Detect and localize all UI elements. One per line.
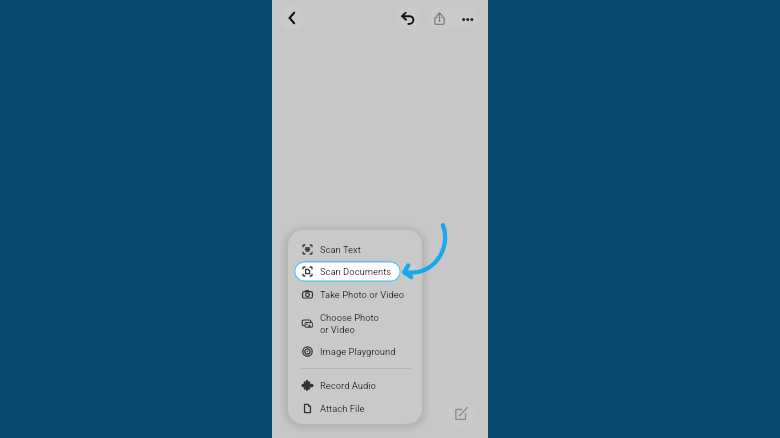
staticText: Choose Photo [320, 312, 379, 323]
button[interactable]: Scan Documents [294, 261, 401, 282]
staticText: Scan Documents [320, 266, 392, 277]
button[interactable]: New note [447, 400, 475, 428]
button[interactable]: Choose Photo [288, 310, 422, 336]
button[interactable]: Scan Text [288, 239, 422, 260]
staticText: Take Photo or Video [320, 289, 405, 300]
staticText: Scan Text [320, 244, 361, 255]
button[interactable]: Attach File [288, 398, 422, 419]
staticText: Attach File [320, 403, 365, 414]
button[interactable]: Record Audio [288, 375, 422, 396]
staticText: or Video [320, 324, 355, 335]
button[interactable]: Undo [396, 6, 420, 30]
button[interactable]: Back [280, 6, 304, 30]
button[interactable]: Take Photo or Video [288, 284, 422, 305]
staticText: Record Audio [320, 380, 376, 391]
button[interactable]: More options [450, 8, 478, 29]
staticText: Image Playground [320, 346, 396, 357]
button[interactable]: Image Playground [288, 341, 422, 362]
button[interactable]: Share [428, 8, 450, 29]
